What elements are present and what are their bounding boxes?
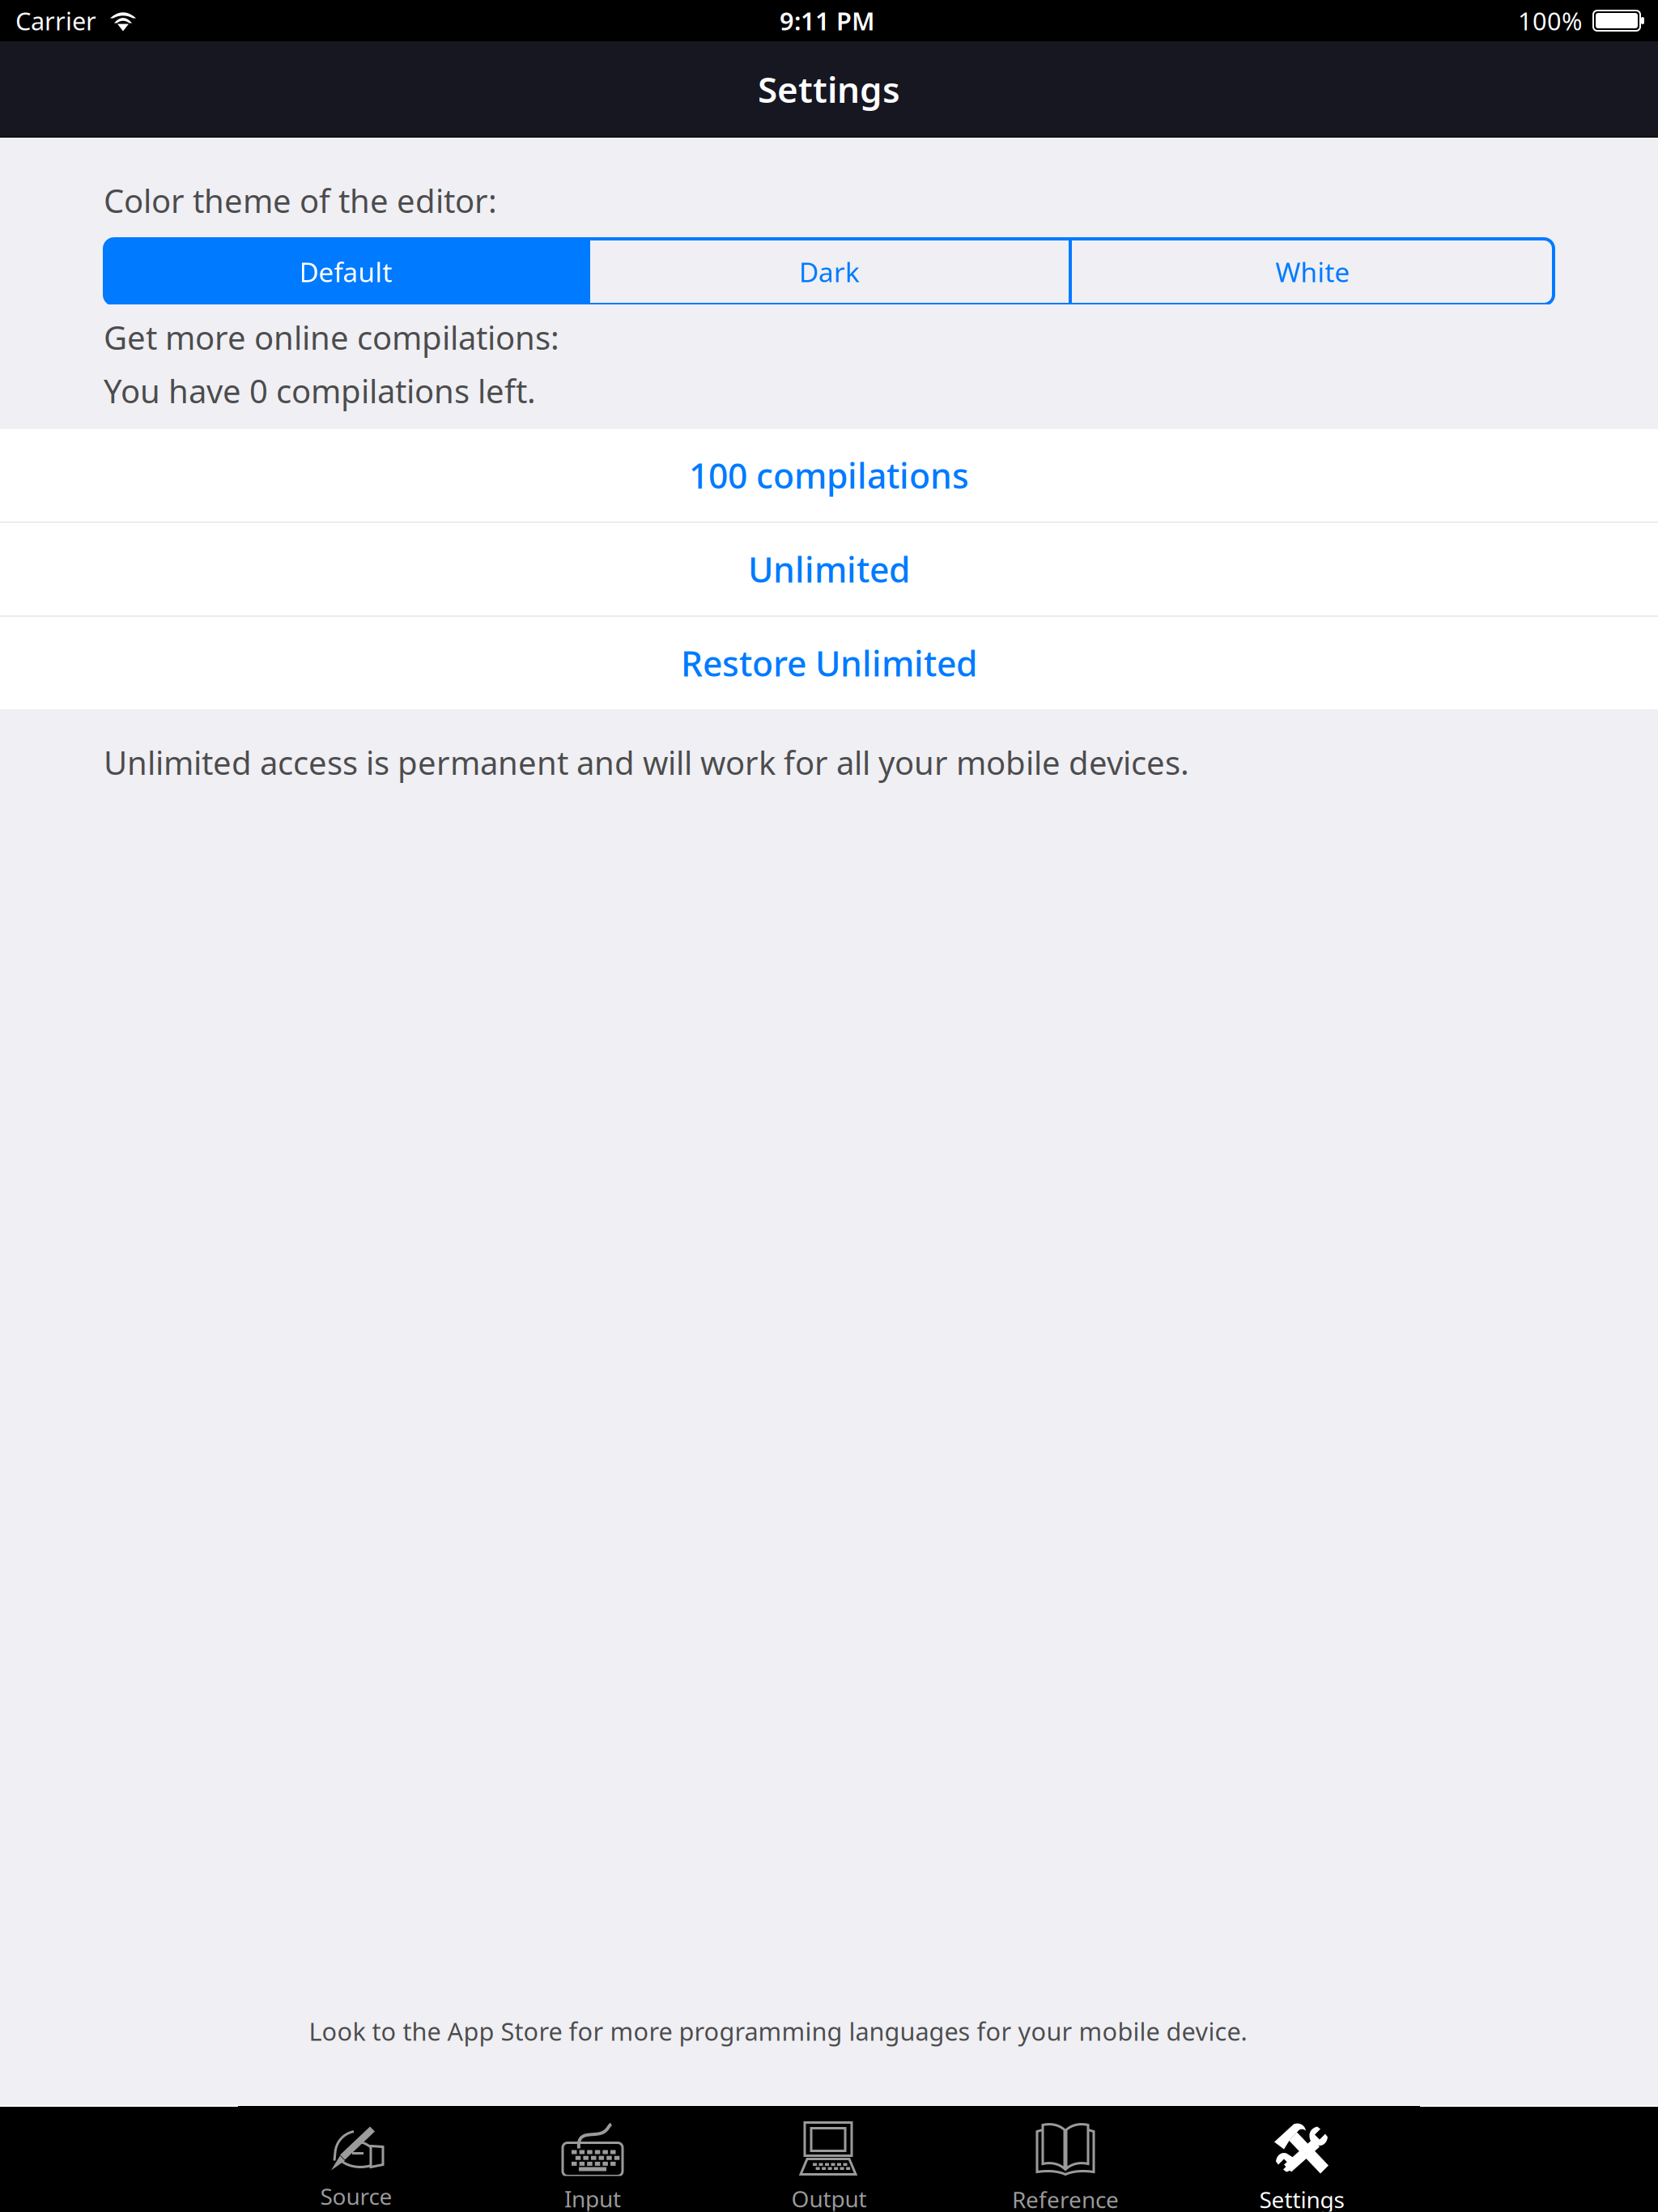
button[interactable]: White <box>1072 239 1554 304</box>
staticText: 9:11 PM <box>780 4 874 37</box>
staticText: Unlimited access is permanent and will w… <box>104 741 1189 784</box>
staticText: Source <box>320 2181 392 2211</box>
staticText: Dark <box>799 254 860 290</box>
button[interactable]: Reference <box>947 2106 1184 2212</box>
button[interactable]: Source <box>238 2106 474 2212</box>
staticText: Settings <box>758 65 900 113</box>
staticText: Get more online compilations: <box>104 316 559 359</box>
button[interactable]: Input <box>474 2106 711 2212</box>
staticText: You have 0 compilations left. <box>104 369 536 412</box>
staticText: Output <box>791 2184 867 2212</box>
button[interactable]: Settings <box>1184 2106 1420 2212</box>
staticText: Look to the App Store for more programmi… <box>309 2015 1247 2047</box>
staticText: Restore Unlimited <box>681 640 977 686</box>
staticText: White <box>1275 254 1350 290</box>
button[interactable]: 100 compilations <box>0 429 1658 521</box>
button[interactable]: Restore Unlimited <box>0 617 1658 709</box>
button[interactable]: Default <box>104 239 587 304</box>
staticText: Color theme of the editor: <box>104 179 497 222</box>
staticText: Carrier <box>15 4 96 37</box>
staticText: 100% <box>1518 4 1582 37</box>
staticText: 100 compilations <box>689 452 969 498</box>
button[interactable]: Dark <box>590 239 1069 304</box>
staticText: Input <box>564 2184 621 2212</box>
button[interactable]: Output <box>711 2106 947 2212</box>
button[interactable]: Unlimited <box>0 523 1658 615</box>
staticText: Reference <box>1012 2184 1119 2212</box>
staticText: Unlimited <box>748 546 910 592</box>
staticText: Settings <box>1259 2184 1344 2212</box>
staticText: Default <box>299 254 392 290</box>
